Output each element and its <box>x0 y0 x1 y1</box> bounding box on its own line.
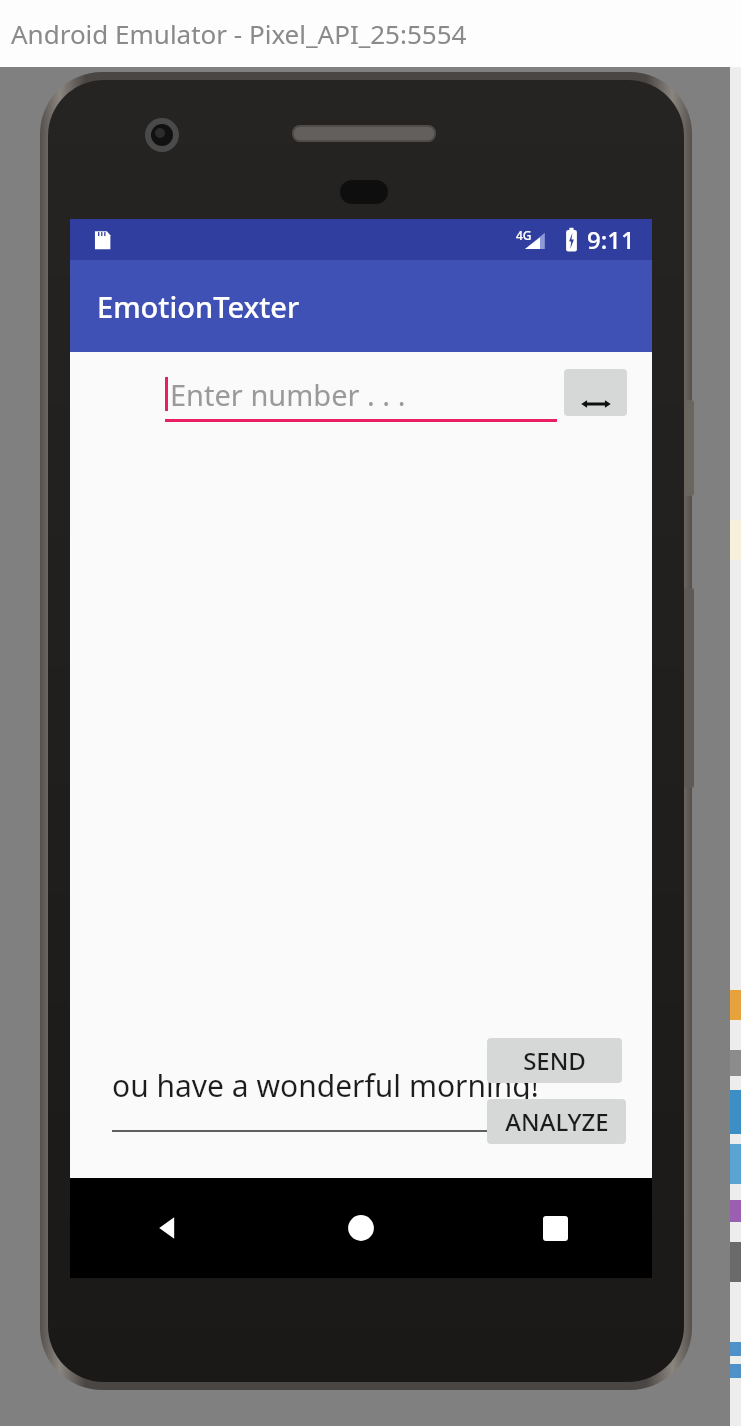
staticText: 9:11 <box>587 223 635 256</box>
button[interactable]: Recent apps <box>458 1178 652 1278</box>
button[interactable]: ou have a wonderful morning! <box>112 1052 624 1132</box>
staticText: Android Emulator - Pixel_API_25:5554 <box>11 16 467 51</box>
button[interactable]: ANALYZE <box>487 1099 626 1144</box>
button[interactable]: Enter number . . . <box>165 370 557 422</box>
button[interactable]: Send number <box>564 369 627 416</box>
staticText: SEND <box>523 1044 586 1077</box>
button[interactable]: SEND <box>487 1038 622 1083</box>
staticText: Enter number . . . <box>170 375 406 414</box>
staticText: EmotionTexter <box>97 287 300 326</box>
button[interactable]: Home <box>264 1178 458 1278</box>
staticText: ANALYZE <box>505 1105 609 1138</box>
staticText: ou have a wonderful morning! <box>112 1065 539 1106</box>
button[interactable]: Back <box>70 1178 264 1278</box>
staticText: 4G <box>516 227 532 243</box>
